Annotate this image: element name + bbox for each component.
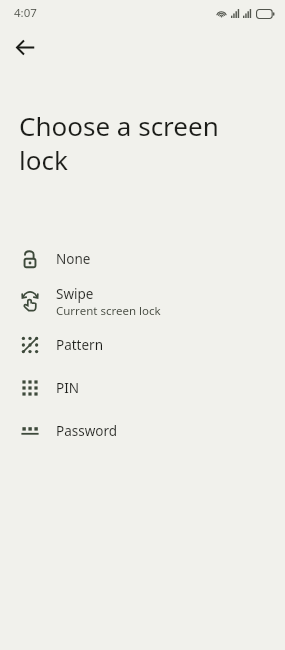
staticText: 4:07 [14,5,37,21]
button[interactable]: Swipe [0,280,285,323]
staticText: PIN [56,379,80,397]
button[interactable]: None [0,237,285,280]
button[interactable]: Back [7,29,43,65]
button[interactable]: Pattern [0,323,285,366]
staticText: None [56,250,91,268]
staticText: Pattern [56,336,104,354]
staticText: Current screen lock [56,303,161,319]
staticText: Password [56,422,118,440]
staticText: Choose a screen lock [19,108,247,177]
button[interactable]: PIN [0,366,285,409]
button[interactable]: Password [0,409,285,452]
staticText: Swipe [56,285,94,303]
